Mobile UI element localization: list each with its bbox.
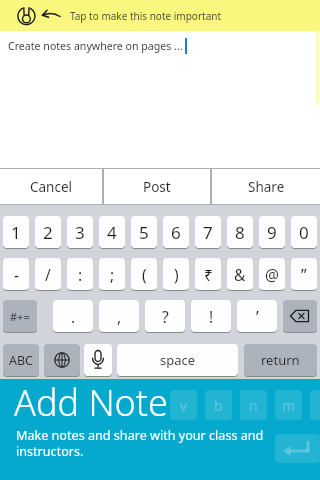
button[interactable]: ” [291,258,317,290]
staticText: / [45,264,51,285]
staticText: Create notes anywhere on pages ... [8,39,183,53]
button[interactable]: return [244,344,317,376]
button[interactable]: 2 [35,216,61,248]
button[interactable]: 3 [67,216,93,248]
button[interactable]: @ [259,258,285,290]
staticText: ” [301,264,307,285]
staticText: v [180,396,188,415]
staticText: ABC [9,352,34,369]
staticText: . [71,306,76,327]
staticText: 1 [11,221,21,244]
staticText: ! [209,306,214,327]
button[interactable]: / [35,258,61,290]
button[interactable]: 9 [259,216,285,248]
staticText: & [234,264,246,285]
button[interactable] [0,379,320,480]
button[interactable]: ABC [3,344,39,376]
button[interactable]: - [3,258,29,290]
button[interactable] [44,344,80,376]
button[interactable]: 0 [291,216,317,248]
button[interactable]: 4 [99,216,125,248]
staticText: 4 [107,221,117,244]
staticText: ₹ [204,264,213,285]
staticText: return [261,351,300,369]
staticText: ? [162,306,169,327]
button[interactable]: 5 [131,216,157,248]
staticText: Tap to make this note important [70,9,222,23]
staticText: ( [142,264,147,285]
button[interactable]: 6 [163,216,189,248]
button[interactable] [0,0,320,31]
staticText: ) [174,264,179,285]
staticText: 6 [171,221,181,244]
button[interactable]: ₹ [195,258,221,290]
staticText: space [160,351,196,369]
button[interactable]: : [67,258,93,290]
button[interactable]: 8 [227,216,253,248]
staticText: 7 [203,221,213,244]
staticText: Make notes and share with your class and… [16,427,264,459]
button[interactable]: ) [163,258,189,290]
button[interactable]: ! [191,300,231,332]
staticText: - [14,264,19,285]
staticText: 0 [299,221,309,244]
staticText: 2 [43,221,53,244]
button[interactable] [283,300,317,332]
staticText: 3 [75,221,85,244]
button[interactable]: ( [131,258,157,290]
button[interactable]: ; [99,258,125,290]
staticText: Post [143,178,171,196]
staticText: 9 [267,221,277,244]
staticText: b [214,396,223,415]
button[interactable]: ’ [237,300,277,332]
staticText: Add Note [14,378,168,427]
button[interactable]: ? [145,300,185,332]
button[interactable]: , [99,300,139,332]
staticText: : [78,264,83,285]
staticText: Cancel [30,178,73,196]
staticText: ’ [256,306,259,327]
staticText: n [249,396,258,415]
staticText: #+= [10,309,30,324]
staticText: m [282,396,296,415]
staticText: @ [265,264,279,285]
button[interactable]: 7 [195,216,221,248]
staticText: , [117,306,122,327]
button[interactable]: 1 [3,216,29,248]
button[interactable]: Post [104,169,210,204]
staticText: Share [248,178,285,196]
button[interactable]: & [227,258,253,290]
staticText: 5 [139,221,149,244]
button[interactable]: . [53,300,93,332]
staticText: ; [110,264,115,285]
button[interactable]: Cancel [0,169,102,204]
button[interactable]: space [117,344,238,376]
button[interactable]: Share [212,169,320,204]
button[interactable]: #+= [3,300,37,332]
button[interactable] [84,344,112,376]
staticText: 8 [235,221,245,244]
